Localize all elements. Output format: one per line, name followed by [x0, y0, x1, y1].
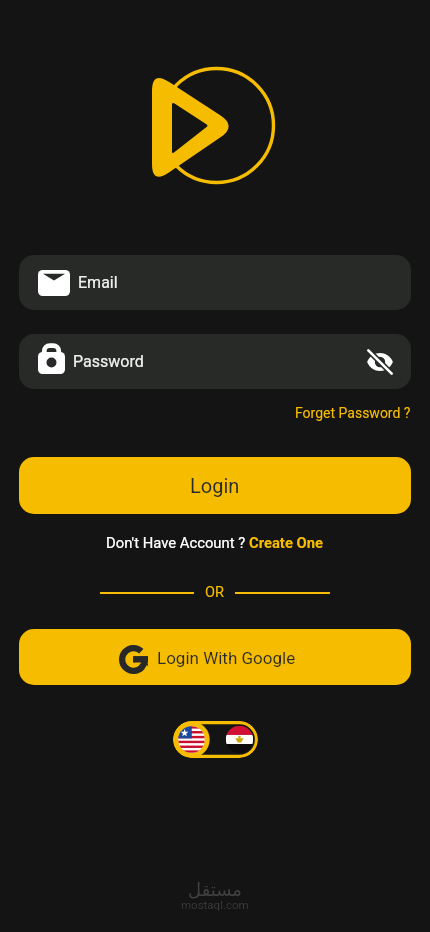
staticText: Create One: [249, 534, 324, 551]
button[interactable]: Change language: [173, 721, 258, 758]
staticText: Don't Have Account ?: [106, 534, 249, 551]
button[interactable]: Login With Google: [19, 629, 411, 685]
button[interactable]: Toggle password visibility: [363, 345, 397, 379]
staticText: مستقل: [188, 879, 242, 900]
button[interactable]: Forget Password ?: [293, 401, 413, 425]
staticText: Login With Google: [157, 648, 296, 668]
staticText: Password: [73, 352, 144, 371]
staticText: Login: [190, 474, 240, 497]
button[interactable]: Login: [19, 457, 411, 514]
button[interactable]: Email: [19, 255, 411, 310]
staticText: mostaql.com: [181, 898, 249, 911]
button[interactable]: Password: [19, 334, 411, 389]
staticText: OR: [205, 584, 224, 601]
staticText: Forget Password ?: [295, 405, 411, 421]
staticText: Email: [78, 273, 118, 292]
button[interactable]: Create One: [249, 534, 324, 551]
